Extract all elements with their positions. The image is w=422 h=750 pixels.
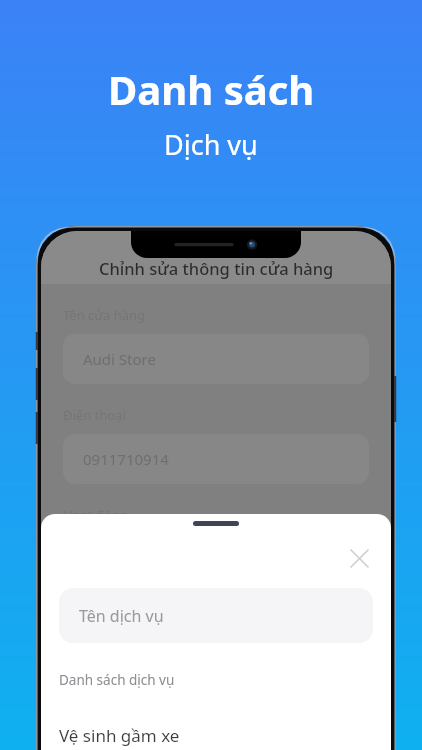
staticText: Danh sách dịch vụ — [59, 671, 175, 689]
staticText: Chỉnh sửa thông tin cửa hàng — [99, 257, 334, 279]
button[interactable]: Close — [339, 538, 379, 578]
button[interactable]: Vệ sinh gầm xe — [41, 715, 391, 750]
staticText: Dịch vụ — [164, 126, 258, 163]
staticText: Danh sách — [108, 62, 315, 116]
staticText: 0911710914 — [83, 449, 169, 469]
staticText: Tên cửa hàng — [63, 306, 146, 324]
staticText: Điện thoại — [63, 406, 126, 424]
button[interactable]: Tên dịch vụ — [59, 588, 373, 643]
staticText: Hoạt động — [63, 506, 128, 524]
staticText: Audi Store — [83, 349, 156, 369]
staticText: Vệ sinh gầm xe — [59, 724, 180, 747]
staticText: Tên dịch vụ — [79, 605, 164, 627]
